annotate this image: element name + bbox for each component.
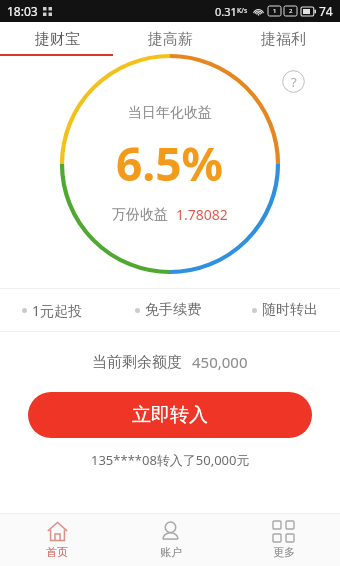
staticText: K/s xyxy=(237,6,248,16)
staticText: 捷福利 xyxy=(261,30,306,49)
staticText: 450,000 xyxy=(192,352,248,372)
staticText: 6.5% xyxy=(116,132,224,195)
staticText: 立即转入 xyxy=(132,403,208,427)
staticText: 万份收益 xyxy=(112,206,168,224)
staticText: 捷财宝 xyxy=(35,30,80,49)
button[interactable]: 更多 xyxy=(227,514,340,566)
staticText: 账户 xyxy=(160,545,182,559)
staticText: 当日年化收益 xyxy=(128,104,212,122)
staticText: 随时转出 xyxy=(262,301,318,319)
staticText: 捷高薪 xyxy=(148,30,193,49)
staticText: 135****08转入了50,000元 xyxy=(91,451,250,469)
button[interactable]: 账户 xyxy=(114,514,227,566)
button[interactable]: 捷福利 xyxy=(227,22,340,56)
button[interactable]: 捷高薪 xyxy=(114,22,227,56)
button[interactable]: 帮助 xyxy=(282,70,305,93)
staticText: 免手续费 xyxy=(145,301,201,319)
button[interactable]: 捷财宝 xyxy=(0,22,114,56)
staticText: 更多 xyxy=(273,545,295,559)
staticText: 首页 xyxy=(46,545,68,559)
button[interactable]: 立即转入 xyxy=(28,392,312,438)
staticText: 1.78082 xyxy=(176,205,228,224)
staticText: ? xyxy=(291,73,297,91)
button[interactable]: 首页 xyxy=(0,514,114,566)
staticText: 2 xyxy=(289,7,293,15)
staticText: 18:03 xyxy=(7,3,38,19)
staticText: 0.31 xyxy=(215,4,237,19)
staticText: 1元起投 xyxy=(32,301,83,320)
staticText: 74 xyxy=(319,3,333,19)
staticText: 1 xyxy=(273,7,277,15)
staticText: 当前剩余额度 xyxy=(92,353,182,372)
